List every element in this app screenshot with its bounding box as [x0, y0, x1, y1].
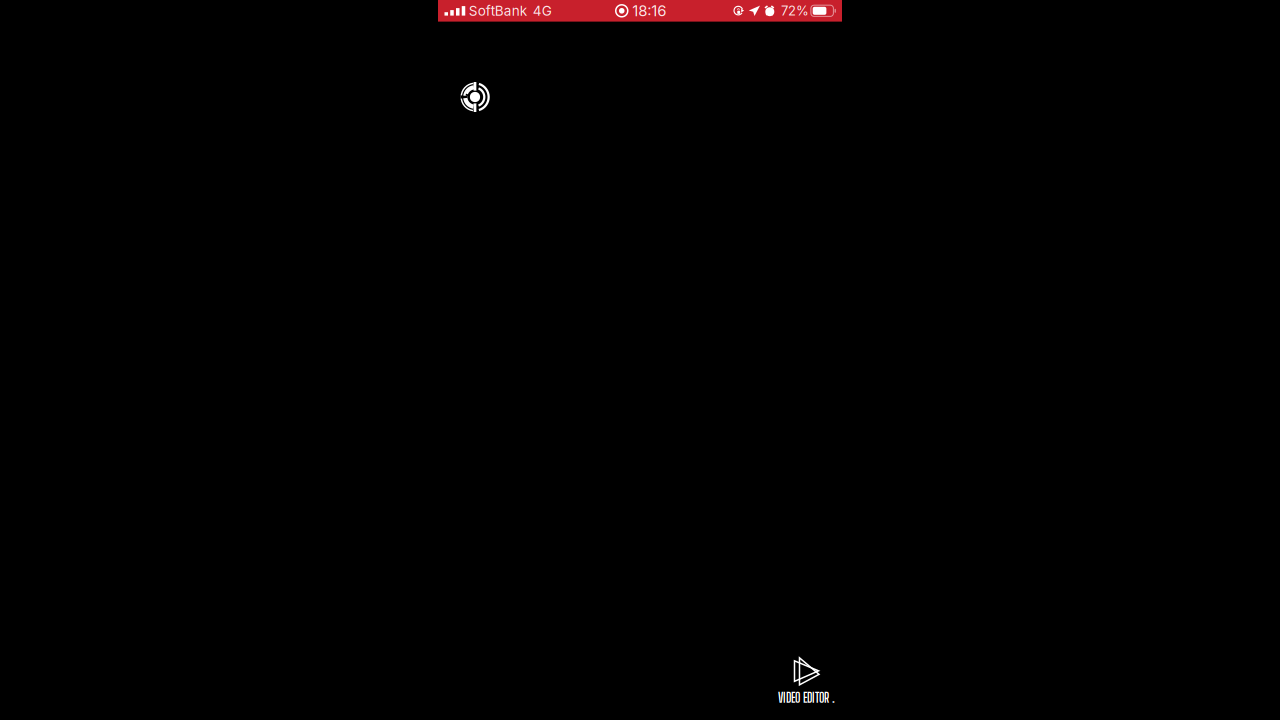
- staticText: 72%: [781, 3, 809, 19]
- staticText: 18:16: [632, 2, 666, 20]
- staticText: SoftBank: [469, 3, 527, 19]
- button[interactable]: App logo: [457, 79, 493, 115]
- staticText: VIDEO EDITOR .: [778, 690, 835, 705]
- staticText: 4G: [533, 3, 552, 19]
